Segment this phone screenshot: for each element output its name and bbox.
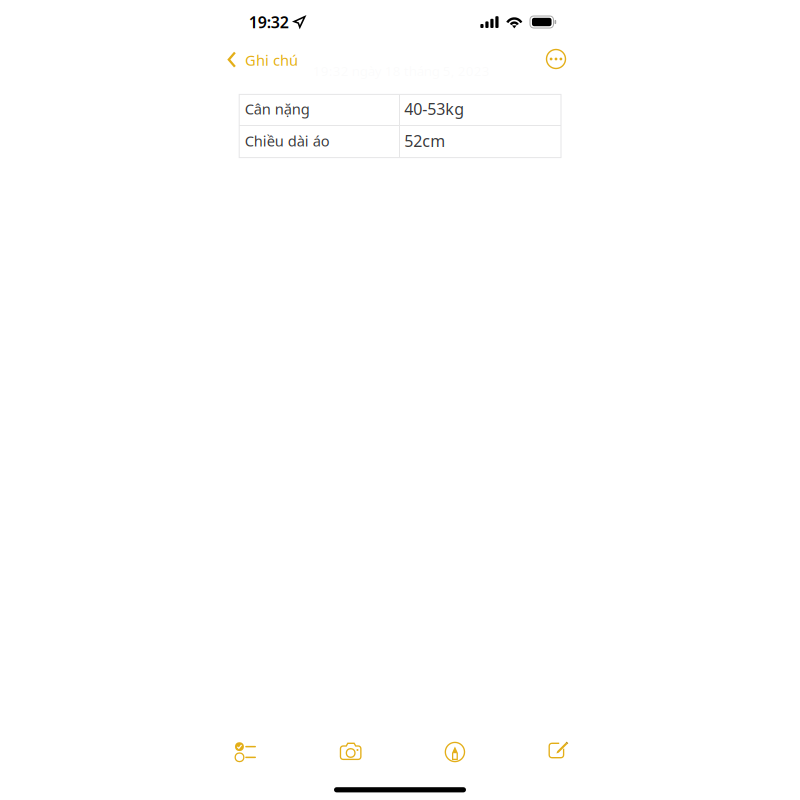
staticText: Cân nặng (245, 99, 310, 118)
staticText: Chiều dài áo (245, 131, 330, 151)
button[interactable]: Markup (438, 735, 471, 769)
button[interactable]: Camera (333, 736, 369, 768)
button[interactable]: More (541, 44, 570, 73)
staticText: 52cm (404, 130, 445, 151)
button[interactable]: Ghi chú (226, 44, 298, 74)
staticText: Ghi chú (245, 50, 298, 70)
button[interactable]: New Note (541, 735, 577, 768)
button[interactable]: Checklist (228, 735, 263, 769)
staticText: 19:32 (249, 11, 289, 33)
staticText: 40-53kg (404, 98, 464, 119)
